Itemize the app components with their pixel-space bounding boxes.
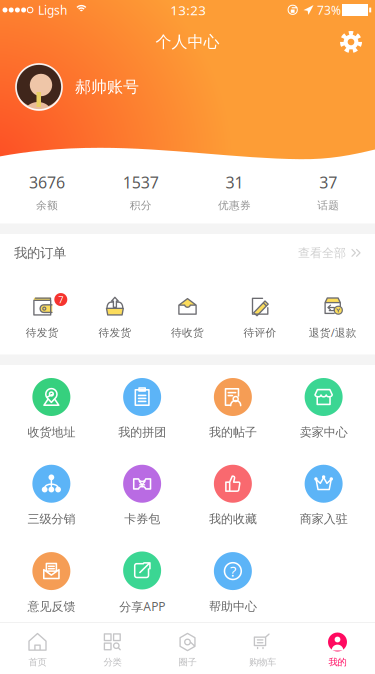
button[interactable]: 商家入驻 [278,465,369,526]
staticText: 分享APP [119,598,165,614]
staticText: 卡券包 [124,512,160,526]
button[interactable]: 我的收藏 [187,465,278,526]
button[interactable]: 待评价 [224,296,296,339]
button[interactable]: ? [187,552,278,614]
staticText: 7 [58,293,63,306]
staticText: 首页 [28,656,46,668]
staticText: 1537 [123,172,159,193]
button[interactable]: 卖家中心 [278,378,369,440]
staticText: 查看全部 [298,246,346,260]
staticText: 圈子 [178,656,196,668]
staticText: 帮助中心 [209,599,257,614]
staticText: 37 [319,172,337,193]
button[interactable]: 意见反馈 [6,552,97,614]
staticText: ? [230,561,236,581]
button[interactable]: 31 [187,166,281,218]
button[interactable]: 退货/退款 [296,296,369,340]
button[interactable]: 待收货 [151,296,224,339]
button[interactable]: 卡券包 [97,465,188,526]
staticText: 郝帅账号 [75,77,139,97]
button[interactable]: 分享APP [97,551,188,614]
staticText: 购物车 [249,656,276,668]
staticText: 分类 [103,656,121,668]
button[interactable]: 我的 [300,632,375,668]
button[interactable]: 37 [281,166,375,218]
staticText: 待收货 [171,326,204,339]
staticText: 73% [317,2,341,18]
button[interactable]: 圈子 [150,632,225,668]
button[interactable]: 7 [6,296,79,339]
button[interactable]: 购物车 [225,632,300,668]
button[interactable]: 设置 [327,21,375,63]
staticText: 三级分销 [27,512,75,526]
staticText: 待发货 [26,326,59,339]
staticText: 优惠券 [218,199,251,212]
staticText: 我的订单 [14,245,66,261]
staticText: 3676 [29,172,65,193]
staticText: 个人中心 [155,32,219,52]
staticText: 待发货 [98,326,131,339]
staticText: 我的收藏 [209,512,257,526]
button[interactable]: 待发货 [79,296,151,339]
staticText: 待评价 [244,326,277,339]
staticText: 余额 [36,199,58,212]
button[interactable]: 查看全部 [298,237,362,269]
staticText: 31 [225,172,243,193]
staticText: 卖家中心 [300,425,348,440]
button[interactable]: 我的帖子 [187,378,278,440]
staticText: 我的 [328,656,346,668]
button[interactable]: 我的拼团 [97,378,188,440]
button[interactable]: 3676 [0,166,94,218]
staticText: 话题 [317,199,339,212]
staticText: 意见反馈 [27,599,75,614]
staticText: 我的帖子 [209,425,257,440]
staticText: 收货地址 [27,425,75,440]
staticText: Ligsh [38,2,67,18]
staticText: 我的拼团 [118,425,166,440]
staticText: 商家入驻 [300,512,348,526]
staticText: 13:23 [170,1,206,19]
button[interactable]: 三级分销 [6,465,97,526]
button[interactable]: 1537 [94,166,188,218]
button[interactable]: 首页 [0,632,75,668]
button[interactable]: 收货地址 [6,378,97,440]
button[interactable]: 分类 [75,632,150,668]
staticText: 积分 [130,199,152,212]
staticText: 退货/退款 [309,325,357,340]
